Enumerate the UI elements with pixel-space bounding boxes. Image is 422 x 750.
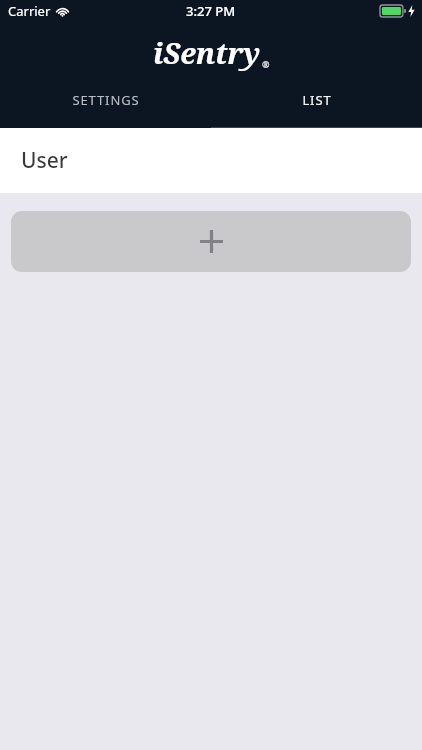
button[interactable]: SETTINGS [0, 82, 211, 128]
staticText: 3:27 PM [186, 2, 236, 20]
staticText: SETTINGS [72, 91, 140, 109]
staticText: Carrier [8, 2, 51, 20]
staticText: ® [262, 58, 270, 70]
staticText: User [21, 146, 68, 175]
button[interactable]: LIST [211, 82, 422, 128]
staticText: iSentry [153, 33, 261, 72]
button[interactable]: Add user [11, 211, 411, 272]
staticText: LIST [302, 91, 332, 109]
